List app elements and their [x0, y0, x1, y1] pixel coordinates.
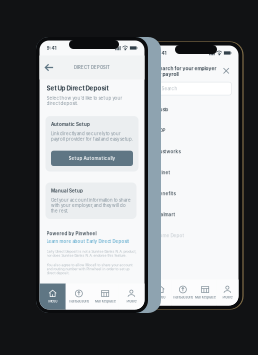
button[interactable]: Metro: [149, 279, 172, 305]
staticText: Learn more about Early Direct Deposit: [46, 239, 129, 244]
staticText: Search for your employer or payroll: [156, 65, 216, 77]
staticText: Search: [161, 86, 177, 91]
staticText: Link directly and securely to your payro…: [51, 131, 133, 142]
button[interactable]: Back: [39, 56, 59, 78]
staticText: 9:41: [156, 50, 166, 56]
staticText: Walmart: [156, 212, 175, 217]
button[interactable]: Metro: [39, 283, 66, 309]
staticText: Zenefits: [156, 191, 175, 196]
staticText: Marketplace: [95, 299, 116, 303]
button[interactable]: Profile: [216, 279, 238, 305]
staticText: You also agree to allow Mocafi to share …: [46, 263, 132, 275]
button[interactable]: Setup Automatically: [51, 151, 133, 166]
staticText: Gusto: [156, 107, 168, 112]
staticText: Transactions: [172, 295, 193, 299]
staticText: Manual Setup: [51, 188, 83, 193]
staticText: Profile: [126, 299, 136, 303]
staticText: Get your account information to share wi…: [51, 197, 131, 213]
button[interactable]: Marketplace: [194, 279, 216, 305]
button[interactable]: Profile: [118, 283, 144, 309]
button[interactable]: Transactions: [66, 283, 92, 309]
button[interactable]: Close: [221, 65, 231, 76]
staticText: Marketplace: [195, 295, 216, 299]
button[interactable]: Transactions: [172, 279, 194, 305]
button[interactable]: Justworks: [149, 141, 238, 162]
button[interactable]: Home Depot: [149, 225, 238, 246]
staticText: ADP: [156, 128, 165, 133]
staticText: Set Up Direct Deposit: [46, 84, 108, 92]
staticText: Setup Automatically: [68, 156, 115, 161]
button[interactable]: Learn more about Early Direct Deposit: [46, 239, 129, 244]
staticText: Trinet: [156, 170, 170, 175]
staticText: Home Depot: [156, 233, 184, 238]
staticText: Justworks: [156, 149, 180, 154]
staticText: Transactions: [68, 299, 89, 303]
staticText: DIRECT DEPOSIT: [74, 65, 110, 70]
staticText: Early Direct Deposit is not a Sunrise Ba…: [46, 249, 136, 258]
button[interactable]: Zenefits: [149, 183, 238, 204]
button[interactable]: ADP: [149, 120, 238, 141]
staticText: Profile: [222, 295, 232, 299]
button[interactable]: Gusto: [149, 99, 238, 120]
button[interactable]: Walmart: [149, 204, 238, 225]
button[interactable]: Marketplace: [92, 283, 118, 309]
staticText: Metro: [48, 299, 57, 303]
staticText: Automatic Setup: [51, 122, 90, 127]
staticText: 9:41: [46, 45, 56, 51]
staticText: Select how you'd like to set up your dir…: [46, 95, 122, 106]
staticText: Powered by Pinwheel: [46, 231, 96, 236]
staticText: Metro: [156, 295, 165, 299]
button[interactable]: Trinet: [149, 162, 238, 183]
